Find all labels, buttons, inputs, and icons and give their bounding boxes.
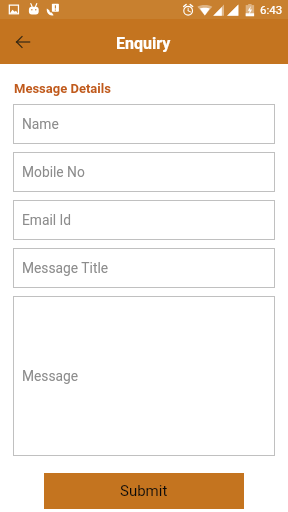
- staticText: Message Details: [14, 81, 111, 96]
- staticText: Mobile No: [22, 164, 85, 180]
- button[interactable]: Back: [8, 27, 38, 57]
- button[interactable]: Message Title: [13, 248, 275, 288]
- staticText: Name: [22, 116, 59, 132]
- button[interactable]: Email Id: [13, 200, 275, 240]
- button[interactable]: Submit: [44, 473, 244, 509]
- button[interactable]: Name: [13, 104, 275, 144]
- staticText: Enquiry: [116, 34, 171, 53]
- staticText: Message: [22, 368, 79, 384]
- button[interactable]: Message: [13, 296, 275, 456]
- staticText: Email Id: [22, 212, 72, 228]
- staticText: 6:43: [260, 3, 283, 16]
- button[interactable]: Mobile No: [13, 152, 275, 192]
- staticText: Submit: [120, 482, 168, 500]
- staticText: Message Title: [22, 260, 109, 276]
